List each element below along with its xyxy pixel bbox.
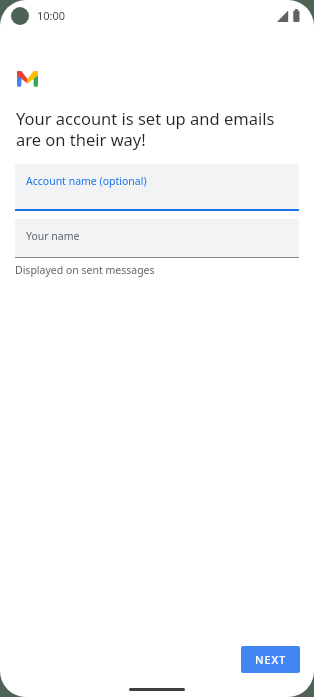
staticText: Your account is set up and emails are on… — [16, 107, 296, 151]
button[interactable]: Account name (optional) — [15, 164, 299, 211]
staticText: Account name (optional) — [26, 174, 147, 188]
staticText: Displayed on sent messages — [15, 263, 155, 277]
staticText: Your name — [26, 229, 80, 243]
staticText: 10:00 — [37, 8, 66, 23]
button[interactable]: Your name — [15, 219, 299, 258]
button[interactable]: NEXT — [241, 646, 300, 673]
staticText: NEXT — [255, 652, 286, 667]
